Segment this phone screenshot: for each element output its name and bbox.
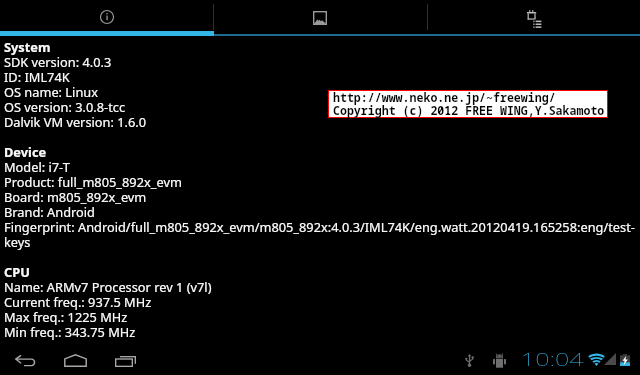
staticText: 10:04 — [521, 347, 611, 371]
staticText: System — [4, 38, 640, 55]
button[interactable]: Home — [50, 341, 100, 375]
staticText: Dalvik VM version: 1.6.0 — [4, 113, 640, 130]
button[interactable]: Recent apps — [100, 341, 150, 375]
staticText: OS version: 3.0.8-tcc — [4, 98, 640, 115]
staticText: ID: IML74K — [4, 68, 640, 85]
staticText: Board: m805_892x_evm — [4, 188, 640, 205]
staticText: Brand: Android — [4, 203, 640, 220]
button[interactable]: Info — [0, 0, 214, 31]
staticText: Name: ARMv7 Processor rev 1 (v7l) — [4, 278, 640, 295]
button[interactable]: Gallery — [214, 0, 427, 31]
staticText: http://www.neko.ne.jp/~freewing/ — [333, 90, 611, 106]
staticText: Max freq.: 1225 MHz — [4, 308, 640, 325]
staticText: SDK version: 4.0.3 — [4, 53, 640, 70]
staticText: keys — [4, 233, 640, 250]
staticText: Fingerprint: Android/full_m805_892x_evm/… — [4, 218, 640, 235]
staticText: CPU — [4, 263, 640, 280]
button[interactable]: List — [427, 0, 640, 31]
staticText: Copyright (c) 2012 FREE WING,Y.Sakamoto — [333, 103, 611, 119]
button[interactable]: Back — [0, 341, 50, 375]
staticText: Device — [4, 143, 640, 160]
staticText: OS name: Linux — [4, 83, 640, 100]
staticText: Min freq.: 343.75 MHz — [4, 323, 640, 340]
staticText: Product: full_m805_892x_evm — [4, 173, 640, 190]
staticText: Model: i7-T — [4, 158, 640, 175]
staticText: Current freq.: 937.5 MHz — [4, 293, 640, 310]
